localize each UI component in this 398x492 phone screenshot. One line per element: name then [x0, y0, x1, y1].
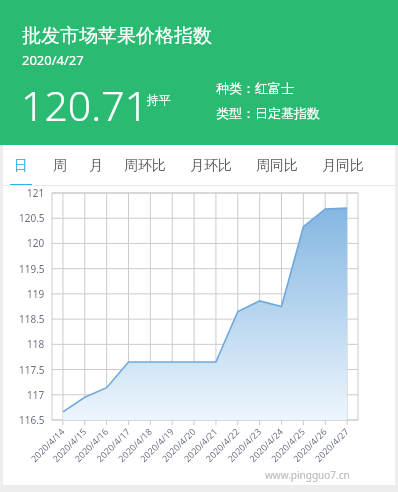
- button[interactable]: 周: [45, 145, 75, 186]
- button[interactable]: 日: [6, 145, 36, 186]
- staticText: 持平: [147, 92, 171, 107]
- staticText: 类型：日定基指数: [216, 105, 320, 121]
- button[interactable]: 月同比: [317, 145, 369, 186]
- staticText: 2020/4/27: [22, 51, 84, 69]
- staticText: 周环比: [124, 157, 166, 175]
- button[interactable]: 月环比: [185, 145, 237, 186]
- staticText: 日: [14, 157, 28, 175]
- button[interactable]: 周同比: [251, 145, 303, 186]
- staticText: 月环比: [190, 157, 232, 175]
- staticText: 批发市场苹果价格指数: [22, 24, 212, 48]
- button[interactable]: 周环比: [119, 145, 171, 186]
- staticText: 月: [89, 157, 103, 175]
- staticText: 月同比: [322, 157, 364, 175]
- staticText: 周同比: [256, 157, 298, 175]
- staticText: 种类：红富士: [216, 80, 294, 96]
- staticText: 120.71: [21, 77, 149, 133]
- staticText: 周: [53, 157, 67, 175]
- button[interactable]: 月: [81, 145, 111, 186]
